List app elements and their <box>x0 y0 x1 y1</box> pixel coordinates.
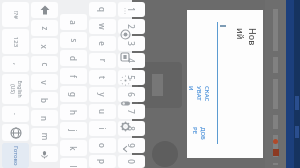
staticText: English (US) <box>8 75 22 102</box>
button[interactable]: b <box>31 92 58 108</box>
button[interactable]: 123 <box>2 29 29 54</box>
staticText: 8 <box>126 126 137 131</box>
button[interactable]: c <box>31 56 58 72</box>
staticText: i <box>97 127 108 130</box>
button[interactable]: 6 <box>118 87 145 102</box>
staticText: 123 <box>11 36 19 47</box>
button[interactable]: Resize <box>118 73 132 87</box>
staticText: p <box>97 159 108 164</box>
button[interactable]: x <box>31 38 58 54</box>
button[interactable]: Collapse <box>118 142 132 156</box>
staticText: 7 <box>126 109 137 114</box>
button[interactable]: !?# <box>2 2 29 27</box>
staticText: q <box>97 7 108 12</box>
staticText: e <box>97 41 108 46</box>
staticText: 0 <box>126 159 137 164</box>
staticText: 3 <box>126 41 137 46</box>
button[interactable]: h <box>60 104 87 120</box>
button[interactable]: 3 <box>118 36 145 51</box>
button[interactable]: s <box>60 32 87 48</box>
button[interactable]: i <box>89 121 116 136</box>
button[interactable]: More options <box>118 4 132 18</box>
button[interactable]: 5 <box>118 70 145 85</box>
staticText: ДОБРЕ <box>191 127 207 143</box>
staticText: j <box>68 129 79 132</box>
button[interactable]: p <box>89 155 116 168</box>
button[interactable]: q <box>89 2 116 17</box>
button[interactable]: Новий <box>187 10 263 158</box>
button[interactable]: Clipboard <box>118 50 132 64</box>
button[interactable]: 0 <box>118 155 145 168</box>
button[interactable]: Theme <box>118 96 132 110</box>
staticText: w <box>97 23 108 30</box>
staticText: !?# <box>11 10 19 19</box>
staticText: , <box>11 63 21 65</box>
button[interactable]: e <box>89 36 116 51</box>
button[interactable]: g <box>60 86 87 102</box>
button[interactable]: y <box>89 87 116 102</box>
button[interactable]: , <box>2 56 29 72</box>
staticText: g <box>68 92 79 97</box>
staticText: t <box>97 76 108 79</box>
staticText: c <box>39 62 50 66</box>
staticText: y <box>97 92 108 97</box>
button[interactable]: Change language <box>2 124 29 141</box>
staticText: m <box>39 132 50 140</box>
staticText: 1 <box>126 7 137 12</box>
staticText: 4 <box>126 58 137 63</box>
staticText: a <box>68 20 79 25</box>
button[interactable]: w <box>89 19 116 34</box>
button[interactable]: English (US) <box>2 74 29 104</box>
staticText: d <box>68 56 79 61</box>
button[interactable]: 7 <box>118 104 145 119</box>
button[interactable]: z <box>31 20 58 36</box>
staticText: . <box>11 113 21 115</box>
button[interactable]: Shift <box>31 2 58 18</box>
button[interactable]: ДОБРЕ <box>191 120 207 150</box>
button[interactable]: 2 <box>118 19 145 34</box>
button[interactable]: m <box>31 128 58 144</box>
button[interactable]: d <box>60 50 87 66</box>
staticText: Новий <box>235 28 259 48</box>
staticText: f <box>68 75 79 78</box>
staticText: o <box>97 143 108 148</box>
staticText: x <box>39 44 50 49</box>
staticText: СКАСУВАТИ <box>187 86 211 102</box>
staticText: l <box>68 165 79 168</box>
staticText: 2 <box>126 24 137 29</box>
button[interactable]: 9 <box>118 138 145 153</box>
button[interactable]: 8 <box>118 121 145 136</box>
staticText: s <box>68 38 79 42</box>
button[interactable]: Settings <box>118 119 132 133</box>
button[interactable]: l <box>60 158 87 168</box>
button[interactable]: t <box>89 70 116 85</box>
staticText: z <box>39 26 50 30</box>
button[interactable]: 4 <box>118 53 145 68</box>
button[interactable]: f <box>60 68 87 84</box>
button[interactable]: o <box>89 138 116 153</box>
staticText: k <box>68 146 79 151</box>
staticText: u <box>97 109 108 114</box>
staticText: 9 <box>126 143 137 148</box>
button[interactable]: Готово <box>2 143 29 168</box>
staticText: 6 <box>126 92 137 97</box>
staticText: Готово <box>12 146 20 166</box>
button[interactable]: . <box>2 106 29 122</box>
staticText: r <box>97 58 108 62</box>
staticText: v <box>39 80 50 85</box>
button[interactable]: 1 <box>118 2 145 17</box>
button[interactable]: n <box>31 110 58 126</box>
button[interactable]: v <box>31 74 58 90</box>
button[interactable]: СКАСУВАТИ <box>191 72 207 116</box>
button[interactable]: r <box>89 53 116 68</box>
button[interactable]: u <box>89 104 116 119</box>
staticText: n <box>39 116 50 121</box>
button[interactable]: Voice input <box>31 146 58 162</box>
staticText: 5 <box>126 75 137 80</box>
button[interactable]: Emoji <box>118 27 132 41</box>
button[interactable]: k <box>60 140 87 156</box>
staticText: b <box>39 98 50 103</box>
button[interactable]: a <box>60 14 87 30</box>
button[interactable]: j <box>60 122 87 138</box>
staticText: h <box>68 110 79 115</box>
